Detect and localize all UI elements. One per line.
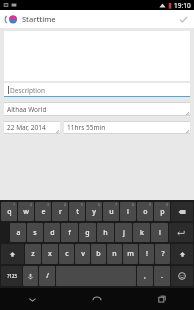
button[interactable]: h (97, 223, 114, 242)
staticText: , (144, 271, 146, 281)
button[interactable]: Althaa World (4, 102, 190, 116)
staticText: ?123 (7, 273, 17, 279)
button[interactable]: / (39, 266, 55, 286)
button[interactable]: Voice input (23, 266, 38, 286)
staticText: Althaa World (7, 105, 47, 114)
button[interactable]: g (79, 223, 96, 242)
staticText: 8 (132, 202, 135, 207)
staticText: p (160, 207, 165, 217)
button[interactable]: 6 (86, 202, 102, 221)
button[interactable]: j (115, 223, 132, 242)
button[interactable]: Done (175, 11, 191, 27)
button[interactable]: Emoji (171, 266, 193, 286)
staticText: l (159, 228, 161, 238)
button[interactable]: c (59, 244, 74, 264)
staticText: 2 (30, 202, 33, 207)
button[interactable]: f (61, 223, 78, 242)
staticText: 9 (149, 202, 152, 207)
button[interactable]: Home (64, 288, 129, 310)
staticText: 11hrs 55min (67, 123, 106, 132)
button[interactable]: k (133, 223, 150, 242)
button[interactable]: 7 (103, 202, 119, 221)
button[interactable]: 3 (35, 202, 51, 221)
button[interactable]: v (75, 244, 90, 264)
staticText: g (85, 228, 90, 238)
button[interactable]: Description (4, 83, 190, 97)
staticText: ? (161, 249, 165, 259)
button[interactable]: Shift (171, 244, 193, 264)
button[interactable]: ! (139, 244, 154, 264)
button[interactable]: x (42, 244, 58, 264)
staticText: y (92, 207, 96, 217)
button[interactable]: Back (0, 288, 64, 310)
staticText: q (7, 207, 12, 217)
staticText: 5 (81, 202, 84, 207)
staticText: n (112, 249, 117, 259)
staticText: 1 (13, 202, 16, 207)
staticText: x (48, 249, 52, 259)
staticText: t (76, 207, 79, 217)
button[interactable]: 5 (69, 202, 85, 221)
button[interactable]: d (44, 223, 60, 242)
button[interactable]: s (27, 223, 43, 242)
button[interactable]: Recent apps (129, 288, 194, 310)
button[interactable]: Enter (169, 223, 193, 242)
button[interactable]: . (154, 266, 170, 286)
button[interactable]: 11hrs 55min (64, 121, 190, 134)
staticText: Starttime (22, 14, 56, 24)
staticText: / (46, 271, 49, 281)
staticText: b (96, 249, 101, 259)
button[interactable]: 8 (120, 202, 136, 221)
staticText: v (81, 249, 85, 259)
staticText: i (127, 207, 129, 217)
staticText: e (41, 207, 46, 217)
staticText: s (33, 228, 37, 238)
staticText: d (50, 228, 55, 238)
staticText: 6 (98, 202, 101, 207)
button[interactable]: m (123, 244, 138, 264)
staticText: u (109, 207, 114, 217)
staticText: a (16, 228, 21, 238)
button[interactable]: l (151, 223, 168, 242)
staticText: o (143, 207, 148, 217)
button[interactable]: ?123 (1, 266, 22, 286)
button[interactable]: Shift (1, 244, 24, 264)
button[interactable]: Delete (171, 202, 193, 221)
staticText: 4 (64, 202, 67, 207)
staticText: 0 (166, 202, 169, 207)
button[interactable]: b (91, 244, 106, 264)
button[interactable]: 0 (154, 202, 170, 221)
button[interactable]: 22 Mar, 2014 (4, 121, 60, 134)
button[interactable]: z (25, 244, 41, 264)
staticText: r (59, 207, 62, 217)
staticText: ! (146, 249, 148, 259)
staticText: w (23, 207, 29, 217)
staticText: 7 (115, 202, 118, 207)
staticText: 22 Mar, 2014 (7, 123, 46, 132)
button[interactable]: 9 (137, 202, 153, 221)
staticText: k (140, 228, 144, 238)
staticText: m (127, 249, 134, 259)
button[interactable]: 4 (52, 202, 68, 221)
staticText: 3 (47, 202, 50, 207)
staticText: z (31, 249, 35, 259)
staticText: j (123, 228, 125, 238)
button[interactable]: Up (3, 11, 19, 27)
staticText: Description (10, 86, 45, 95)
staticText: f (68, 228, 71, 238)
button[interactable]: 1 (1, 202, 17, 221)
button[interactable]: 2 (18, 202, 34, 221)
staticText: 19:10 (174, 1, 191, 10)
button[interactable]: ? (155, 244, 170, 264)
button[interactable]: , (137, 266, 153, 286)
button[interactable]: a (10, 223, 26, 242)
button[interactable]: n (107, 244, 122, 264)
staticText: . (161, 271, 163, 281)
staticText: h (103, 228, 108, 238)
staticText: c (65, 249, 69, 259)
